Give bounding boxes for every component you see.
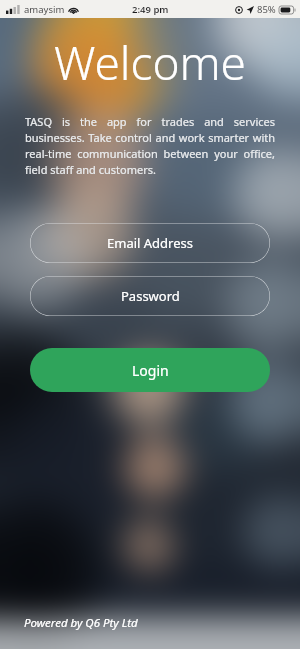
button[interactable]: Email Address bbox=[30, 223, 270, 263]
staticText: 2:49 pm bbox=[132, 3, 169, 16]
staticText: amaysim bbox=[24, 3, 65, 16]
staticText: 85% bbox=[257, 3, 276, 16]
staticText: TASQ is the app for trades and services … bbox=[25, 114, 275, 177]
staticText: Powered by Q6 Pty Ltd bbox=[24, 615, 138, 631]
staticText: Email Address bbox=[107, 234, 193, 252]
button[interactable]: Password bbox=[30, 276, 270, 316]
staticText: Login bbox=[132, 361, 169, 380]
button[interactable]: Login bbox=[30, 348, 270, 392]
staticText: Welcome bbox=[54, 31, 247, 94]
staticText: Password bbox=[121, 287, 180, 305]
